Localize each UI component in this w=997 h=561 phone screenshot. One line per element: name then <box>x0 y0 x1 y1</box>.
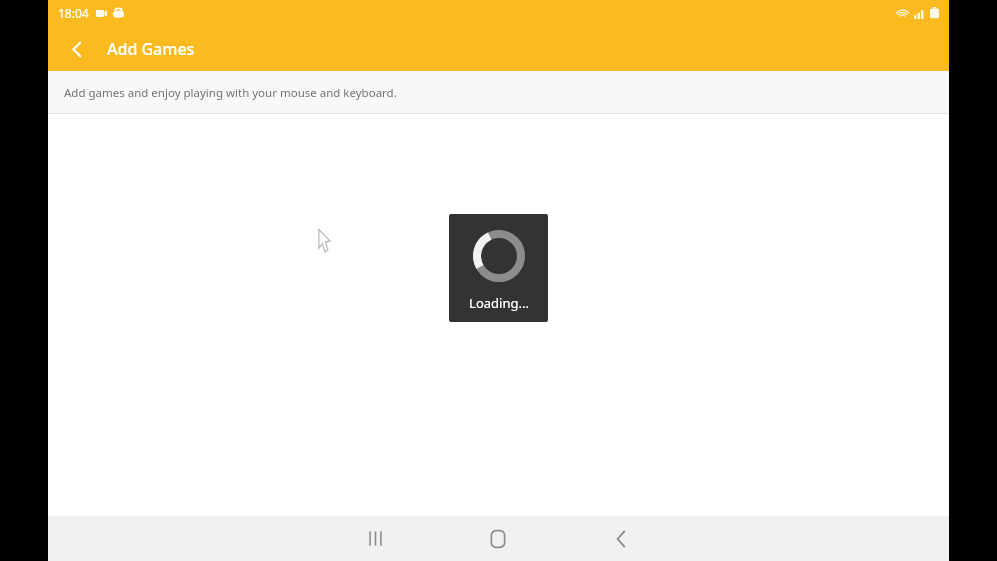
staticText: 18:04 <box>58 5 89 21</box>
button[interactable]: Loading <box>449 214 548 322</box>
staticText: Add Games <box>107 38 195 60</box>
button[interactable]: Recent apps <box>351 516 399 561</box>
button[interactable]: Home <box>474 516 522 561</box>
staticText: Loading... <box>469 294 529 312</box>
button[interactable]: Back <box>597 516 645 561</box>
staticText: Add games and enjoy playing with your mo… <box>64 85 397 101</box>
button[interactable]: Back <box>58 30 96 68</box>
